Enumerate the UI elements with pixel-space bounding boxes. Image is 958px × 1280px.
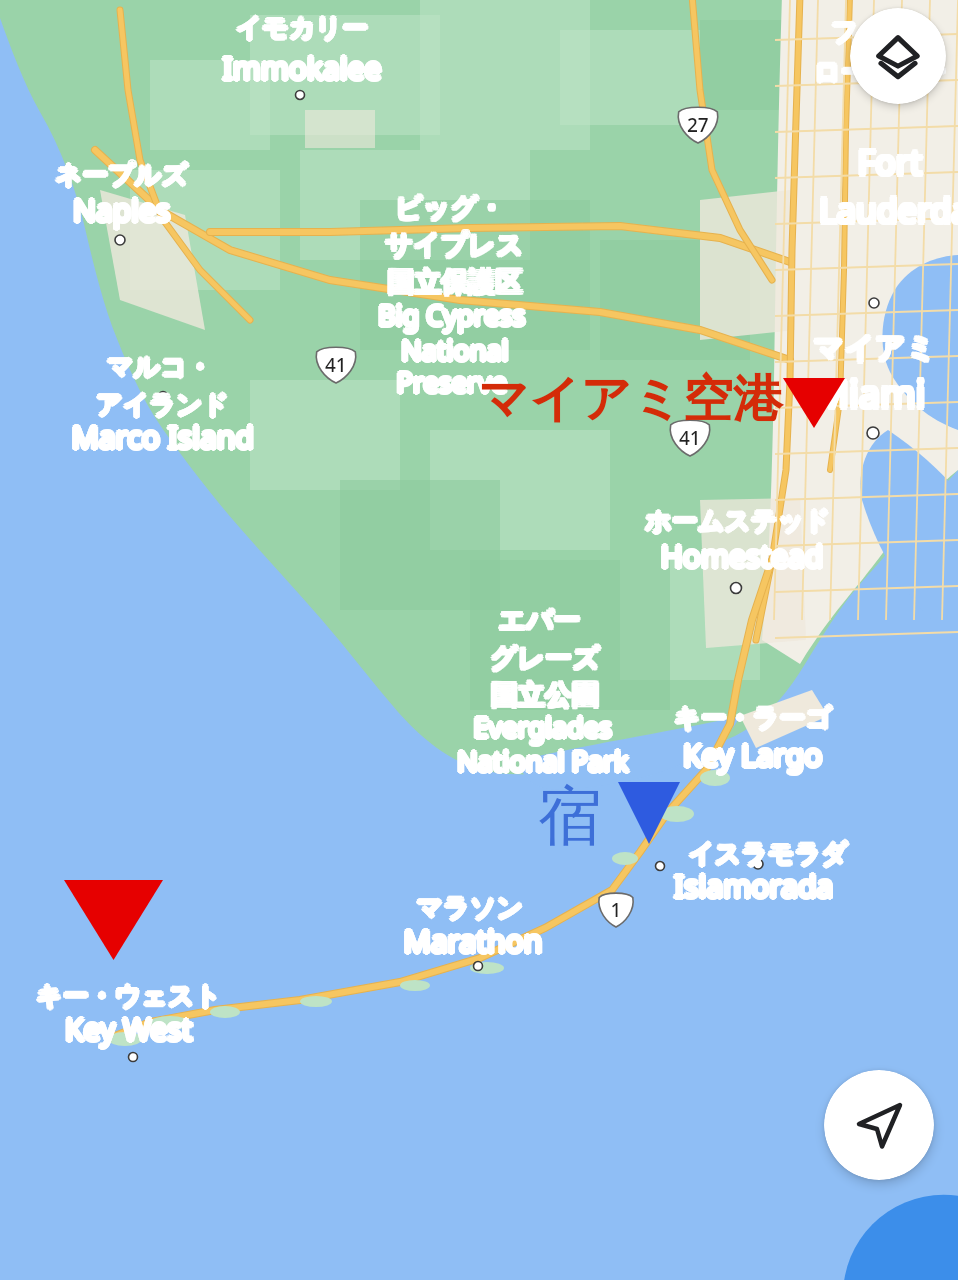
button[interactable]: Map layers bbox=[850, 8, 946, 104]
button[interactable]: My location bbox=[824, 1070, 934, 1180]
